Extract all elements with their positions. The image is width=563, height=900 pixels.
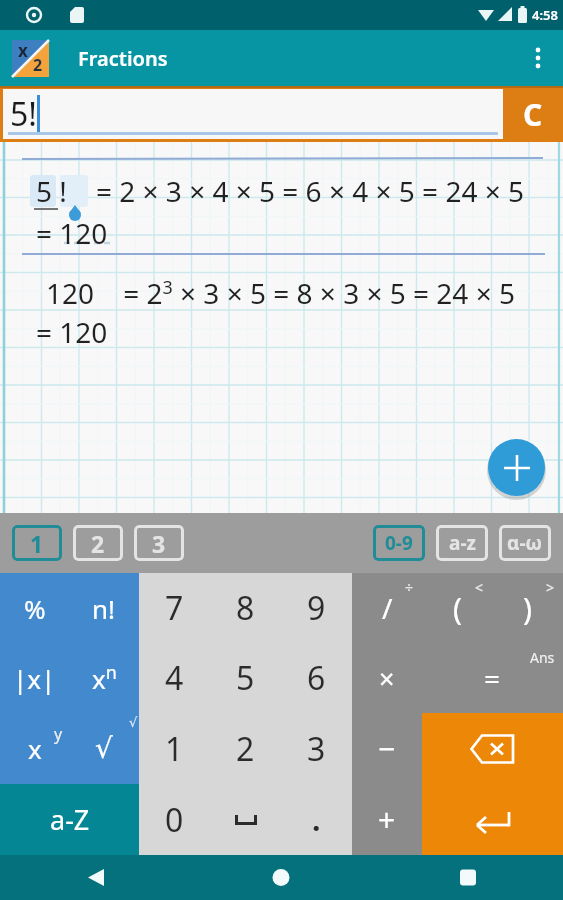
staticText: ÷	[405, 578, 414, 597]
staticText: +	[378, 799, 396, 840]
staticText: a-Z	[50, 801, 90, 838]
button[interactable]: α-ω	[499, 525, 551, 561]
button[interactable]	[375, 855, 563, 900]
button[interactable]: =	[422, 643, 563, 713]
button[interactable]: √	[69, 713, 139, 784]
staticText: .	[312, 799, 321, 840]
button[interactable]: 4	[139, 643, 210, 713]
staticText: = 120	[36, 313, 108, 351]
staticText: y	[54, 723, 63, 745]
staticText: %	[24, 591, 46, 626]
staticText: )	[523, 588, 532, 629]
staticText: 0	[165, 798, 184, 842]
staticText: /	[382, 589, 393, 627]
staticText: x	[18, 39, 28, 62]
button[interactable]: 2	[73, 525, 123, 561]
staticText: 1	[30, 528, 44, 559]
button[interactable]: C	[503, 86, 563, 142]
staticText: >	[546, 578, 555, 597]
button[interactable]: x	[0, 713, 69, 784]
button[interactable]	[0, 855, 187, 900]
button[interactable]: %	[0, 573, 69, 643]
button[interactable]	[422, 713, 563, 784]
staticText: (	[453, 588, 462, 629]
staticText: 0-9	[385, 530, 413, 556]
button[interactable]: xn	[69, 643, 139, 713]
button[interactable]: 3	[134, 525, 184, 561]
button[interactable]: 1	[139, 713, 210, 784]
staticText: 7	[165, 586, 184, 630]
button[interactable]	[488, 439, 545, 496]
staticText: 3	[152, 528, 166, 559]
staticText: ×	[379, 660, 395, 697]
button[interactable]: 0	[139, 784, 210, 855]
staticText: x	[28, 731, 42, 766]
staticText: 2	[91, 528, 105, 559]
staticText: 2	[33, 54, 43, 76]
staticText: 5	[236, 656, 255, 700]
staticText: |x|	[13, 661, 56, 696]
button[interactable]: 8	[210, 573, 281, 643]
staticText: √	[95, 732, 113, 765]
staticText: n!	[92, 591, 116, 626]
button[interactable]: 2	[210, 713, 281, 784]
button[interactable]: 9	[281, 573, 352, 643]
staticText: 120 = 23 × 3 × 5 = 8 × 3 × 5 = 24 × 5	[46, 274, 515, 312]
button[interactable]: a-Z	[0, 784, 139, 855]
staticText: Fractions	[78, 45, 168, 72]
button[interactable]: 0-9	[373, 525, 425, 561]
staticText: α-ω	[507, 530, 543, 556]
staticText: 2	[236, 727, 255, 771]
staticText: 1	[165, 727, 184, 771]
staticText: 4	[165, 656, 184, 700]
button[interactable]: 3	[281, 713, 352, 784]
staticText: −	[378, 728, 396, 769]
button[interactable]	[422, 784, 563, 855]
staticText: Ans	[530, 648, 555, 667]
staticText: 5 ! = 2 × 3 × 4 × 5 = 6 × 4 × 5 = 24 × 5	[36, 172, 525, 210]
staticText: 4:58	[532, 6, 558, 24]
button[interactable]	[523, 43, 553, 73]
button[interactable]: n!	[69, 573, 139, 643]
staticText: xn	[92, 660, 117, 696]
button[interactable]	[210, 784, 281, 855]
button[interactable]: −	[352, 713, 422, 784]
button[interactable]: )	[492, 573, 563, 643]
button[interactable]: a-z	[436, 525, 488, 561]
button[interactable]: +	[352, 784, 422, 855]
staticText: 3	[307, 727, 326, 771]
staticText: 8	[236, 586, 255, 630]
staticText: =	[484, 659, 501, 697]
staticText: a-z	[449, 530, 476, 556]
button[interactable]: 6	[281, 643, 352, 713]
button[interactable]: .	[281, 784, 352, 855]
button[interactable]: (	[422, 573, 492, 643]
button[interactable]	[187, 855, 375, 900]
button[interactable]: /	[352, 573, 422, 643]
staticText: <	[475, 578, 484, 597]
staticText: √	[129, 715, 138, 730]
staticText: 5!	[10, 92, 37, 136]
button[interactable]: ×	[352, 643, 422, 713]
staticText: 6	[307, 656, 326, 700]
staticText: = 120	[36, 214, 108, 252]
staticText: C	[523, 94, 543, 135]
button[interactable]: 7	[139, 573, 210, 643]
button[interactable]: |x|	[0, 643, 69, 713]
button[interactable]: 1	[12, 525, 62, 561]
staticText: 9	[307, 586, 326, 630]
button[interactable]: 5	[210, 643, 281, 713]
